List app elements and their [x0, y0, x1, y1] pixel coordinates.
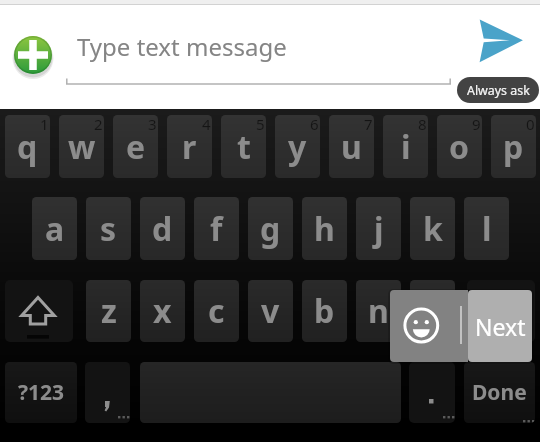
staticText: w	[68, 125, 96, 169]
staticText: m	[417, 289, 449, 333]
staticText: k	[423, 207, 443, 251]
button[interactable]: m	[410, 280, 455, 342]
button[interactable]: Shift	[5, 280, 73, 342]
button[interactable]: Send	[474, 14, 528, 68]
staticText: 6	[310, 115, 319, 134]
staticText: o	[449, 125, 470, 169]
button[interactable]: Next	[468, 290, 532, 362]
staticText: s	[100, 207, 117, 251]
button[interactable]: Always ask	[457, 77, 539, 103]
button[interactable]: Emoji	[390, 290, 468, 362]
staticText: i	[401, 125, 411, 169]
staticText: a	[45, 207, 65, 251]
staticText: 1	[40, 115, 49, 134]
button[interactable]: Period	[409, 362, 455, 423]
button[interactable]: s	[86, 197, 131, 260]
staticText: y	[288, 125, 307, 169]
button[interactable]: Type text message	[66, 18, 451, 82]
button[interactable]: q	[5, 115, 50, 178]
button[interactable]: y	[275, 115, 320, 178]
staticText: Type text message	[77, 30, 287, 63]
button[interactable]: f	[194, 197, 239, 260]
button[interactable]: w	[59, 115, 104, 178]
staticText: g	[260, 207, 281, 251]
button[interactable]: b	[302, 280, 347, 342]
button[interactable]: i	[383, 115, 428, 178]
button[interactable]: k	[410, 197, 455, 260]
staticText: b	[314, 289, 335, 333]
button[interactable]: d	[140, 197, 185, 260]
button[interactable]: l	[464, 197, 509, 260]
button[interactable]: n	[356, 280, 401, 342]
button[interactable]: c	[194, 280, 239, 342]
staticText: r	[182, 125, 197, 169]
staticText: z	[101, 289, 117, 333]
staticText: j	[374, 207, 384, 251]
button[interactable]: Attach	[14, 36, 52, 74]
button[interactable]: Comma	[85, 362, 130, 423]
staticText: e	[126, 125, 146, 169]
staticText: f	[210, 207, 223, 251]
staticText: 5	[256, 115, 265, 134]
staticText: Always ask	[467, 82, 530, 99]
staticText: 0	[526, 115, 535, 134]
button[interactable]: p	[491, 115, 536, 178]
button[interactable]: ?123	[5, 362, 77, 423]
staticText: 9	[472, 115, 481, 134]
staticText: p	[503, 125, 524, 169]
staticText: n	[368, 289, 389, 333]
staticText: Next	[475, 311, 526, 342]
button[interactable]: u	[329, 115, 374, 178]
staticText: ?123	[18, 378, 65, 407]
button[interactable]: e	[113, 115, 158, 178]
staticText: 4	[202, 115, 211, 134]
staticText: Done	[472, 378, 527, 407]
staticText: 3	[148, 115, 157, 134]
button[interactable]: z	[86, 280, 131, 342]
button[interactable]: Backspace	[467, 280, 535, 342]
button[interactable]: v	[248, 280, 293, 342]
button[interactable]: x	[140, 280, 185, 342]
staticText: v	[261, 289, 280, 333]
staticText: t	[237, 125, 251, 169]
staticText: 8	[418, 115, 427, 134]
button[interactable]: r	[167, 115, 212, 178]
button[interactable]: t	[221, 115, 266, 178]
button[interactable]: j	[356, 197, 401, 260]
button[interactable]: g	[248, 197, 293, 260]
staticText: x	[153, 289, 172, 333]
staticText: q	[17, 125, 38, 169]
staticText: l	[482, 207, 492, 251]
staticText: 2	[94, 115, 103, 134]
staticText: d	[152, 207, 173, 251]
staticText: 7	[364, 115, 373, 134]
button[interactable]: a	[32, 197, 77, 260]
button[interactable]: h	[302, 197, 347, 260]
staticText: u	[341, 125, 362, 169]
staticText: c	[208, 289, 225, 333]
staticText: h	[314, 207, 335, 251]
button[interactable]: Done	[464, 362, 535, 423]
button[interactable]: o	[437, 115, 482, 178]
